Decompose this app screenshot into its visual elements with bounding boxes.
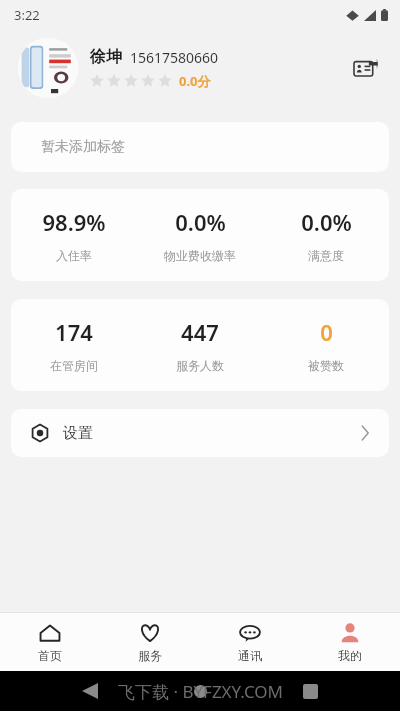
staticText: 98.9% [42,207,106,237]
staticText: 3:22 [14,6,40,24]
button[interactable]: Share contact card [348,50,384,86]
staticText: 0.0分 [179,72,211,90]
staticText: 物业费收缴率 [164,248,236,263]
staticText: 0.0% [175,207,226,237]
staticText: 通讯 [238,648,262,663]
button[interactable]: 暂未添加标签 [11,122,389,172]
staticText: 447 [181,317,219,347]
staticText: 徐坤 [90,47,122,67]
staticText: 首页 [38,648,62,663]
staticText: 入住率 [56,248,92,263]
button[interactable]: 447 [137,299,263,391]
staticText: 174 [55,317,93,347]
button[interactable]: 174 [11,299,137,391]
button[interactable]: 98.9% [11,189,137,281]
staticText: 被赞数 [308,358,344,373]
button[interactable]: 0.0% [263,189,389,281]
button[interactable]: 0.0% [137,189,263,281]
staticText: 暂未添加标签 [41,138,125,156]
staticText: 设置 [63,424,93,443]
staticText: 服务人数 [176,358,224,373]
button[interactable]: 服务 [100,613,200,671]
button[interactable]: Avatar [18,38,78,98]
button[interactable]: 0 [263,299,389,391]
button[interactable]: 首页 [0,613,100,671]
staticText: 在管房间 [50,358,98,373]
staticText: 满意度 [308,248,344,263]
button[interactable]: 通讯 [200,613,300,671]
button[interactable]: 设置 [11,409,389,457]
staticText: 服务 [138,648,162,663]
staticText: 我的 [338,648,362,663]
staticText: 0 [320,317,333,347]
button[interactable]: 我的 [300,613,400,671]
staticText: 0.0% [301,207,352,237]
staticText: 飞下载 · BYFZXY.COM [118,680,283,703]
staticText: 15617580660 [130,48,219,67]
